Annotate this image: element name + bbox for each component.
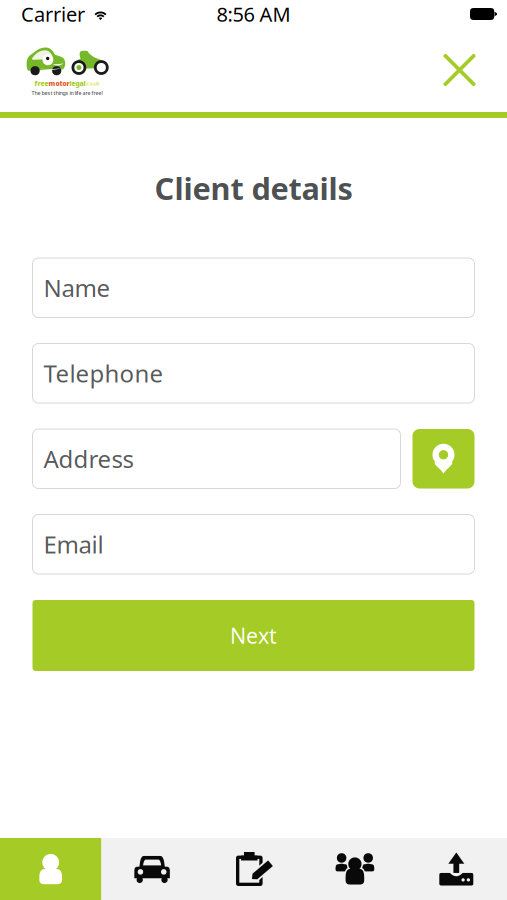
button[interactable]: Client details (0, 838, 101, 900)
staticText: The best things in life are free! (31, 89, 102, 97)
staticText: Name (43, 272, 110, 304)
staticText: Carrier (21, 1, 85, 27)
staticText: Telephone (43, 357, 163, 389)
button[interactable]: Upload (406, 838, 507, 900)
staticText: free (34, 79, 48, 88)
staticText: 8:56 AM (216, 1, 290, 27)
button[interactable]: Find address (412, 429, 474, 488)
staticText: Client details (154, 168, 352, 208)
button[interactable]: Accident report (203, 838, 304, 900)
staticText: Next (230, 621, 277, 650)
staticText: .co.uk (85, 80, 99, 87)
staticText: legal (69, 79, 85, 88)
staticText: motor (48, 79, 69, 88)
button[interactable]: Passengers (304, 838, 406, 900)
staticText: Email (43, 528, 103, 560)
button[interactable]: Close (432, 42, 487, 97)
staticText: Address (43, 443, 133, 475)
button[interactable]: Next (32, 600, 474, 671)
button[interactable]: Vehicle (101, 838, 203, 900)
